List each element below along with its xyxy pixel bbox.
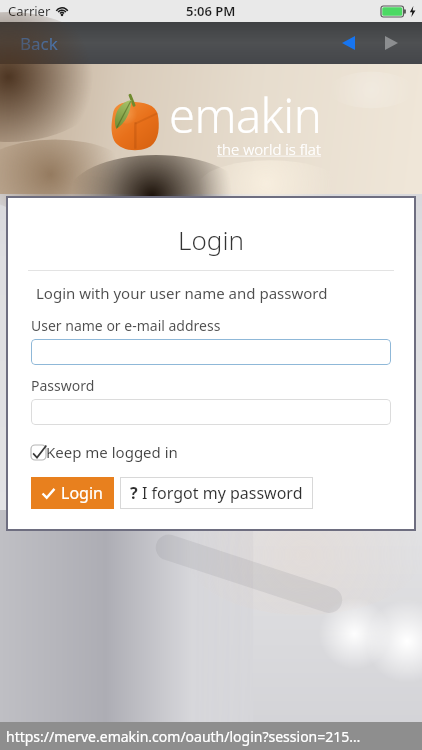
button[interactable] (31, 399, 391, 425)
staticText: Login (61, 482, 103, 504)
staticText: 5:06 PM (186, 2, 236, 20)
button[interactable]: ? (120, 477, 313, 509)
staticText: Login with your user name and password (36, 283, 328, 303)
staticText: Back (20, 32, 58, 55)
button[interactable]: Forward (377, 28, 406, 58)
staticText: ? (130, 482, 138, 504)
staticText: Password (31, 376, 95, 395)
staticText: Keep me logged in (46, 442, 178, 462)
button[interactable] (31, 339, 391, 365)
button[interactable]: Login (31, 477, 114, 509)
staticText: emakin (169, 83, 322, 147)
button[interactable]: Back (12, 26, 66, 61)
staticText: https://merve.emakin.com/oauth/login?ses… (6, 727, 361, 746)
staticText: I forgot my password (142, 482, 303, 504)
staticText: the world is flat (217, 139, 322, 159)
button[interactable]: Back (334, 28, 363, 58)
button[interactable]: Keep me logged in (31, 442, 178, 462)
staticText: User name or e-mail address (31, 316, 221, 335)
staticText: Login (6, 222, 416, 257)
staticText: Carrier (8, 2, 51, 20)
